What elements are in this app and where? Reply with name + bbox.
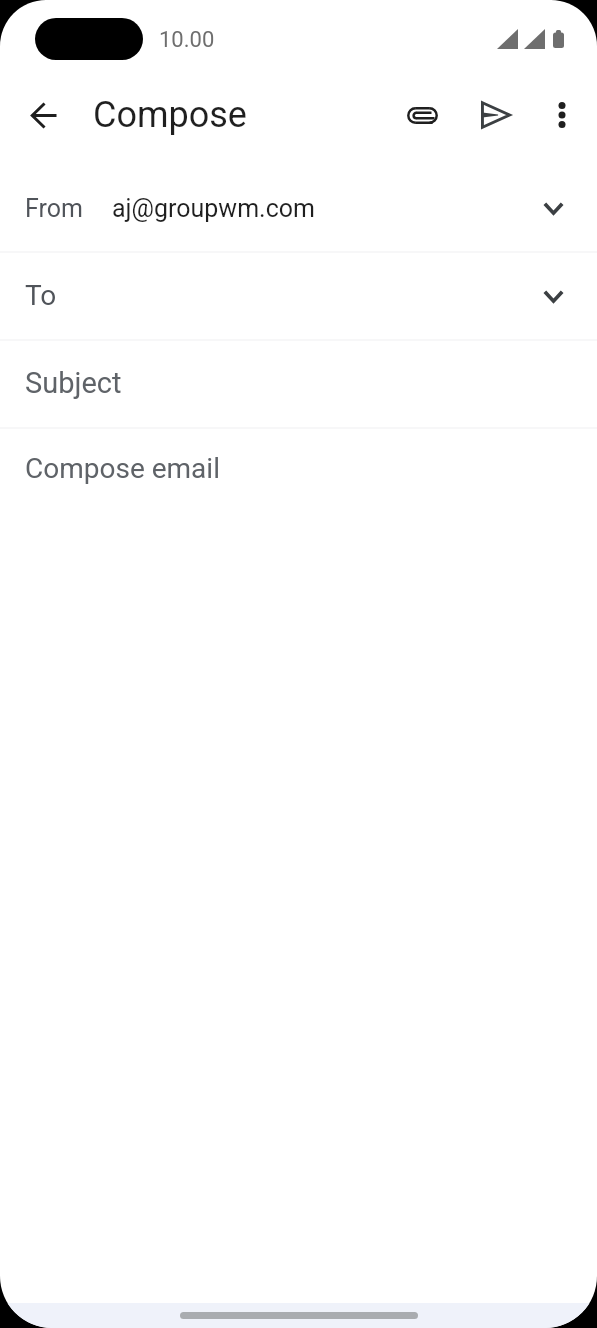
staticText: Subject bbox=[25, 366, 122, 400]
button[interactable]: Subject bbox=[0, 341, 597, 427]
staticText: Compose email bbox=[25, 452, 220, 485]
button[interactable]: To bbox=[0, 253, 597, 339]
button[interactable]: Attach file bbox=[396, 89, 448, 141]
staticText: To bbox=[25, 279, 57, 312]
staticText: 10.00 bbox=[159, 27, 215, 53]
button[interactable]: Send bbox=[470, 89, 522, 141]
button[interactable]: More options bbox=[536, 89, 588, 141]
staticText: From bbox=[25, 194, 83, 223]
button[interactable]: Compose email bbox=[0, 429, 597, 511]
button[interactable]: Back bbox=[20, 91, 68, 139]
staticText: Compose bbox=[93, 94, 247, 136]
button[interactable]: From bbox=[0, 165, 597, 251]
staticText: aj@groupwm.com bbox=[112, 194, 315, 223]
